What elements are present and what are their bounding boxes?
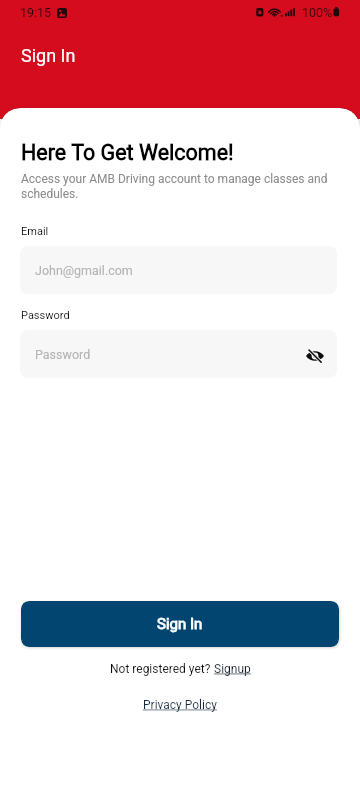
- button[interactable]: Toggle password visibility: [303, 344, 327, 368]
- staticText: Access your AMB Driving account to manag…: [21, 172, 336, 201]
- staticText: Password: [35, 347, 91, 362]
- staticText: John@gmail.com: [35, 263, 133, 278]
- staticText: Signup: [214, 662, 251, 676]
- staticText: 100%: [302, 5, 333, 20]
- staticText: Sign In: [157, 615, 203, 633]
- staticText: Sign In: [21, 45, 76, 66]
- button[interactable]: Sign In: [21, 601, 339, 647]
- staticText: Password: [21, 309, 70, 322]
- button[interactable]: Signup: [214, 662, 251, 676]
- staticText: 19:15: [20, 5, 52, 20]
- button[interactable]: Privacy Policy: [143, 698, 217, 712]
- button[interactable]: John@gmail.com: [20, 246, 337, 294]
- staticText: Not registered yet?: [110, 662, 214, 676]
- staticText: Here To Get Welcome!: [21, 140, 234, 165]
- staticText: Privacy Policy: [143, 698, 217, 712]
- button[interactable]: Password: [20, 330, 337, 378]
- staticText: Email: [21, 225, 49, 238]
